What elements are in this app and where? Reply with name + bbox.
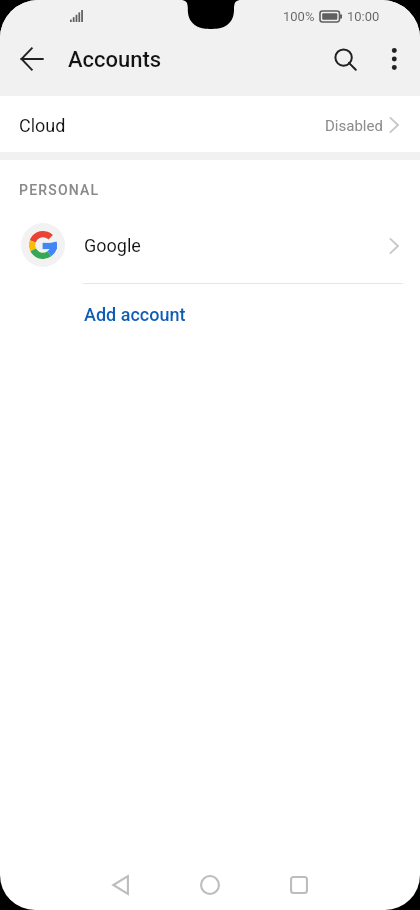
button[interactable]: Search xyxy=(318,33,370,85)
button[interactable]: Back xyxy=(4,31,60,87)
staticText: Cloud xyxy=(19,115,66,136)
button[interactable]: Back xyxy=(96,861,144,909)
button[interactable]: Cloud xyxy=(0,96,420,152)
button[interactable]: Add account xyxy=(0,284,420,344)
staticText: Add account xyxy=(84,304,186,325)
staticText: Disabled xyxy=(325,117,383,135)
button[interactable]: Google xyxy=(0,206,420,283)
staticText: Google xyxy=(84,235,141,256)
button[interactable]: Recent apps xyxy=(275,861,323,909)
button[interactable]: Home xyxy=(186,861,234,909)
staticText: 10:00 xyxy=(347,9,380,24)
staticText: 100% xyxy=(283,9,315,24)
staticText: PERSONAL xyxy=(19,182,100,198)
staticText: Accounts xyxy=(68,47,162,73)
button[interactable]: More options xyxy=(368,33,420,85)
